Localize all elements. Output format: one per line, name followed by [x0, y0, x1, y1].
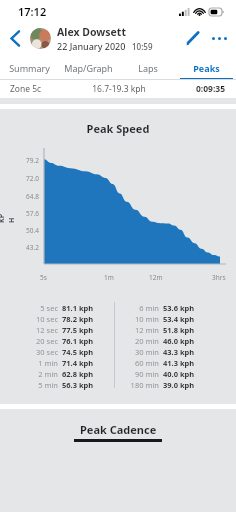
button[interactable]: Summary — [0, 55, 59, 80]
staticText: 81.1 kph — [62, 303, 110, 313]
staticText: 12 sec — [18, 325, 58, 335]
button[interactable]: Edit — [178, 22, 206, 55]
staticText: 43.3 kph — [163, 347, 212, 357]
staticText: 5 sec — [18, 303, 58, 313]
staticText: 64.8 — [14, 192, 39, 201]
staticText: Peaks — [193, 62, 220, 74]
staticText: 5 min — [18, 380, 58, 390]
staticText: 39.0 kph — [163, 380, 212, 390]
staticText: 56.3 kph — [62, 380, 110, 390]
staticText: 71.4 kph — [62, 358, 110, 368]
staticText: 17:12 — [18, 4, 47, 19]
staticText: 72.0 — [14, 174, 39, 183]
staticText: 76.1 kph — [62, 336, 110, 346]
staticText: 53.4 kph — [163, 314, 212, 324]
staticText: Laps — [138, 62, 158, 74]
staticText: 0:09:35 — [196, 83, 226, 95]
staticText: 10 min — [119, 314, 159, 324]
staticText: KPH — [0, 209, 17, 223]
staticText: 79.2 — [14, 156, 39, 165]
staticText: 41.3 kph — [163, 358, 212, 368]
staticText: 12m — [149, 273, 163, 282]
staticText: 22 January 2020 — [57, 40, 126, 52]
staticText: 5s — [40, 273, 47, 282]
staticText: 180 min — [119, 380, 159, 390]
staticText: 20 sec — [18, 336, 58, 346]
button[interactable]: More options — [206, 22, 232, 55]
staticText: 51.8 kph — [163, 325, 212, 335]
staticText: 12 min — [119, 325, 159, 335]
staticText: 2 min — [18, 369, 58, 379]
staticText: 74.5 kph — [62, 347, 110, 357]
staticText: 20 min — [119, 336, 159, 346]
staticText: 60 min — [119, 358, 159, 368]
staticText: Zone 5c — [10, 83, 42, 95]
staticText: 1m — [104, 273, 114, 282]
staticText: 40.0 kph — [163, 369, 212, 379]
staticText: Summary — [9, 62, 50, 74]
staticText: Alex Dowsett — [57, 25, 126, 39]
staticText: 1 min — [18, 358, 58, 368]
staticText: 46.0 kph — [163, 336, 212, 346]
button[interactable]: Laps — [118, 55, 177, 80]
staticText: Peak Speed — [0, 121, 236, 136]
staticText: 43.2 — [14, 243, 39, 252]
staticText: 30 sec — [18, 347, 58, 357]
staticText: 62.8 kph — [62, 369, 110, 379]
staticText: 78.2 kph — [62, 314, 110, 324]
button[interactable]: Map/Graph — [59, 55, 118, 80]
staticText: 57.6 — [14, 209, 39, 218]
staticText: 10 sec — [18, 314, 58, 324]
staticText: 6 min — [119, 303, 159, 313]
staticText: 53.6 kph — [163, 303, 212, 313]
staticText: 16.7-19.3 kph — [42, 83, 196, 95]
staticText: Map/Graph — [64, 62, 113, 74]
staticText: 30 min — [119, 347, 159, 357]
staticText: Peak Cadence — [80, 422, 157, 437]
staticText: 10:59 — [132, 41, 153, 52]
staticText: 3hrs — [212, 273, 226, 282]
staticText: 50.4 — [14, 226, 39, 235]
staticText: 77.5 kph — [62, 325, 110, 335]
button[interactable]: Back — [0, 22, 30, 55]
staticText: 90 min — [119, 369, 159, 379]
button[interactable]: Peaks — [177, 55, 236, 80]
button[interactable]: Zone 5c — [0, 80, 236, 98]
